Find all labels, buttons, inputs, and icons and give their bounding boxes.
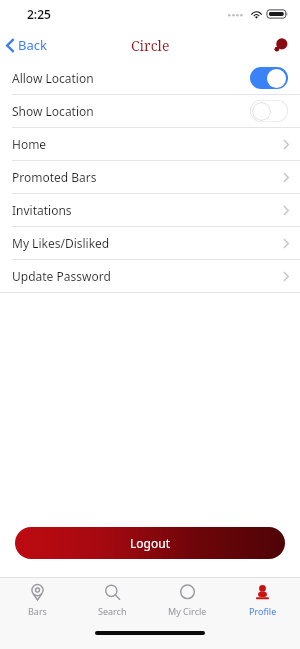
staticText: Invitations xyxy=(12,202,72,218)
staticText: Profile xyxy=(249,605,277,617)
button[interactable]: Promoted Bars xyxy=(0,161,300,193)
staticText: Bars xyxy=(28,605,47,617)
button[interactable]: Bars xyxy=(0,578,75,622)
button[interactable]: My Circle xyxy=(150,578,225,622)
staticText: Allow Location xyxy=(12,70,94,86)
staticText: Update Password xyxy=(12,268,111,284)
button[interactable]: Allow Location xyxy=(0,62,300,94)
staticText: Logout xyxy=(130,535,170,551)
staticText: Search xyxy=(98,605,127,617)
staticText: Promoted Bars xyxy=(12,169,97,185)
staticText: Home xyxy=(12,136,47,152)
button[interactable]: Messages xyxy=(270,34,292,56)
staticText: 2:25 xyxy=(27,6,51,22)
staticText: My Likes/Disliked xyxy=(12,235,110,251)
button[interactable]: Logout xyxy=(15,527,285,559)
staticText: Back xyxy=(18,36,47,54)
other: Off xyxy=(250,100,288,122)
button[interactable]: Profile xyxy=(225,578,300,622)
staticText: Circle xyxy=(131,36,170,55)
button[interactable]: Search xyxy=(75,578,150,622)
button[interactable]: Back xyxy=(0,32,55,58)
other: On xyxy=(250,67,288,89)
staticText: Show Location xyxy=(12,103,94,119)
staticText: My Circle xyxy=(168,605,207,617)
button[interactable]: Home xyxy=(0,128,300,160)
button[interactable]: My Likes/Disliked xyxy=(0,227,300,259)
button[interactable]: Show Location xyxy=(0,95,300,127)
button[interactable]: Invitations xyxy=(0,194,300,226)
button[interactable]: Update Password xyxy=(0,260,300,292)
